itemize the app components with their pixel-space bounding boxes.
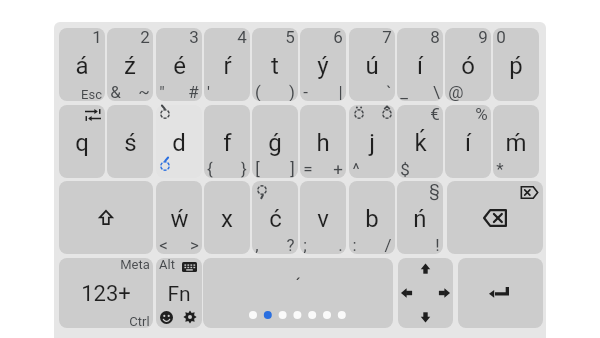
staticText: = — [303, 159, 313, 178]
button[interactable]: 1 — [59, 28, 105, 101]
button[interactable]: ; — [300, 181, 346, 254]
staticText: d — [172, 129, 186, 157]
staticText: v — [317, 205, 329, 233]
staticText: & — [110, 82, 121, 101]
button[interactable]: { — [204, 105, 250, 178]
button[interactable]: 2 — [107, 28, 153, 101]
staticText: ´ — [295, 274, 301, 295]
staticText: 7 — [382, 28, 392, 47]
staticText: Alt — [159, 258, 175, 272]
staticText: > — [190, 235, 199, 254]
staticText: 5 — [285, 28, 295, 47]
staticText: Esc — [81, 87, 102, 101]
staticText: ; — [303, 235, 307, 254]
staticText: ẃ — [170, 205, 189, 233]
staticText: ? — [286, 235, 295, 254]
staticText: % — [475, 105, 488, 124]
button[interactable]: q — [59, 105, 105, 178]
staticText: f — [223, 129, 232, 157]
button[interactable]: 8 — [397, 28, 443, 101]
staticText: # — [188, 82, 199, 101]
button[interactable]: § — [397, 181, 443, 254]
button[interactable]: Arrow keys — [398, 258, 453, 328]
staticText: \ — [433, 82, 440, 101]
staticText: ' — [207, 82, 210, 101]
staticText: ǵ — [268, 129, 282, 157]
staticText: 6 — [333, 28, 343, 47]
button[interactable]: [ — [252, 105, 298, 178]
staticText: ) — [289, 82, 295, 101]
staticText: ŕ — [223, 52, 232, 80]
staticText: ó — [461, 52, 475, 80]
button[interactable]: ^ — [349, 105, 395, 178]
staticText: í — [465, 129, 471, 157]
staticText: ý — [317, 52, 329, 80]
button[interactable]: ś — [107, 105, 153, 178]
button[interactable]: * — [493, 105, 539, 178]
button[interactable]: 0 — [493, 28, 539, 101]
button[interactable]: Alt — [156, 258, 202, 328]
staticText: ! — [435, 235, 440, 254]
staticText: 9 — [478, 28, 488, 47]
staticText: : — [352, 235, 357, 254]
staticText: } — [241, 159, 247, 178]
staticText: 0 — [496, 28, 506, 47]
button[interactable]: 7 — [349, 28, 395, 101]
button[interactable]: Shift — [59, 181, 153, 254]
staticText: ź — [124, 52, 136, 80]
staticText: ṕ — [509, 52, 523, 80]
button[interactable]: % — [445, 105, 491, 178]
staticText: ś — [124, 129, 137, 157]
staticText: 8 — [430, 28, 440, 47]
button[interactable]: 4 — [204, 28, 250, 101]
staticText: ú — [365, 52, 379, 80]
staticText: ` — [386, 82, 392, 101]
staticText: * — [496, 159, 504, 178]
staticText: - — [303, 82, 308, 101]
button[interactable]: : — [349, 181, 395, 254]
staticText: + — [333, 159, 343, 178]
button[interactable]: 6 — [300, 28, 346, 101]
staticText: Ctrl — [129, 314, 150, 328]
staticText: í — [417, 52, 423, 80]
staticText: á — [75, 52, 89, 80]
staticText: b — [365, 205, 379, 233]
button[interactable]: Backspace — [447, 181, 543, 254]
button[interactable]: Space — [203, 258, 393, 328]
button[interactable]: Meta — [59, 258, 153, 328]
staticText: ć — [269, 205, 282, 233]
button[interactable]: = — [300, 105, 346, 178]
button[interactable]: 9 — [445, 28, 491, 101]
staticText: 1 — [92, 28, 102, 47]
button[interactable]: x — [204, 181, 250, 254]
staticText: 4 — [237, 28, 247, 47]
staticText: < — [159, 235, 168, 254]
button[interactable]: 3 — [156, 28, 202, 101]
staticText: h — [316, 129, 330, 157]
button[interactable]: < — [156, 181, 202, 254]
staticText: j — [369, 129, 375, 157]
staticText: § — [429, 181, 440, 200]
button[interactable]: , — [252, 181, 298, 254]
staticText: . — [338, 235, 343, 254]
staticText: é — [173, 52, 186, 80]
staticText: ] — [290, 159, 295, 178]
staticText: Meta — [120, 258, 150, 272]
button[interactable]: 5 — [252, 28, 298, 101]
staticText: _ — [400, 82, 408, 101]
staticText: ḱ — [414, 129, 427, 157]
button[interactable]: € — [397, 105, 443, 178]
staticText: , — [255, 235, 259, 254]
button[interactable]: d — [156, 105, 202, 178]
staticText: ^ — [352, 159, 360, 178]
staticText: $ — [400, 159, 410, 178]
staticText: ń — [413, 205, 427, 233]
staticText: x — [221, 205, 233, 233]
staticText: € — [430, 105, 440, 124]
staticText: Fn — [167, 282, 191, 307]
staticText: / — [384, 235, 392, 254]
staticText: q — [75, 129, 89, 157]
staticText: t — [271, 52, 279, 80]
button[interactable]: Enter — [458, 258, 543, 328]
staticText: | — [338, 82, 343, 101]
